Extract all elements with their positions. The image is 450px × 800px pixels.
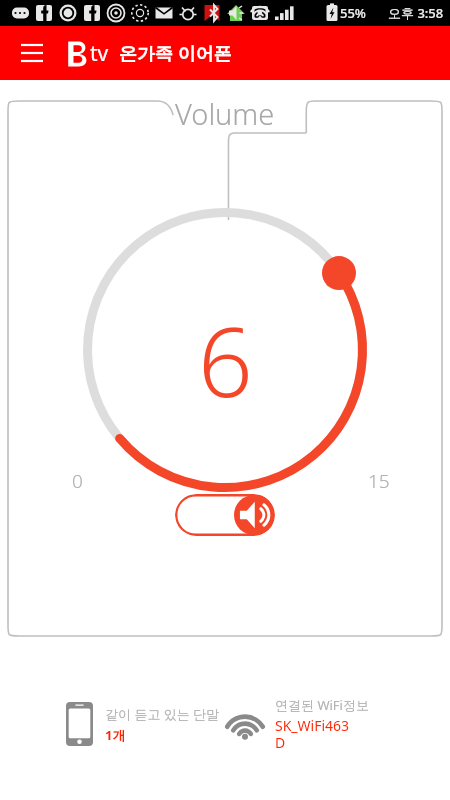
staticText: 15 xyxy=(368,468,390,494)
staticText: Volume xyxy=(175,94,275,133)
staticText: 연결된 WiFi정보 xyxy=(275,696,369,714)
staticText: 온가족 이어폰 xyxy=(119,41,232,66)
staticText: 6 xyxy=(198,294,253,425)
staticText: 0 xyxy=(72,468,83,494)
button[interactable]: Menu xyxy=(8,29,56,77)
button[interactable]: 연결된 WiFi정보 xyxy=(225,696,450,752)
button[interactable]: 같이 듣고 있는 단말 xyxy=(0,702,225,746)
button[interactable]: Sound on/off xyxy=(175,494,275,536)
staticText: 오후 3:58 xyxy=(388,4,444,22)
staticText: 55% xyxy=(340,4,366,22)
staticText: 같이 듣고 있는 단말 xyxy=(105,705,220,723)
staticText: tv xyxy=(90,39,109,68)
staticText: 1개 xyxy=(105,726,126,744)
staticText: SK_WiFi463 D xyxy=(275,716,350,752)
